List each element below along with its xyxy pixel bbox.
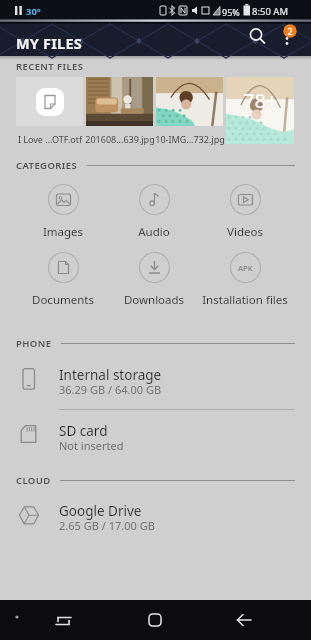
button[interactable] (0, 416, 311, 462)
button[interactable] (139, 604, 171, 636)
staticText: I Love ...OTF.otf (12, 133, 88, 145)
button[interactable]: Audio (109, 184, 199, 240)
staticText: Videos (200, 224, 290, 240)
button[interactable]: Downloads (109, 252, 199, 308)
staticText: Downloads (109, 292, 199, 308)
staticText: 95% (222, 6, 240, 18)
staticText: SD card (59, 422, 108, 440)
staticText: 2 (286, 25, 294, 37)
staticText: 8:50 AM (252, 5, 289, 18)
button[interactable]: Images (18, 184, 108, 240)
staticText: CLOUD (16, 474, 51, 487)
staticText: APK (238, 263, 253, 273)
staticText: MY FILES (16, 33, 82, 53)
button[interactable]: 10-IMG...732.jpg (156, 77, 223, 145)
staticText: RECENT FILES (16, 60, 84, 73)
staticText: PHONE (16, 337, 52, 350)
button[interactable]: 2 (275, 24, 307, 56)
staticText: 10-IMG...732.jpg (152, 133, 228, 145)
button[interactable] (228, 604, 260, 636)
button[interactable] (241, 24, 273, 56)
button[interactable]: Documents (18, 252, 108, 308)
staticText: Images (18, 224, 108, 240)
button[interactable] (0, 496, 311, 542)
staticText: Not inserted (59, 438, 124, 453)
staticText: Audio (109, 224, 199, 240)
button[interactable]: I Love ...OTF.otf (16, 77, 83, 145)
staticText: 30° (26, 5, 41, 18)
button[interactable]: APK (200, 252, 290, 308)
staticText: Documents (18, 292, 108, 308)
staticText: Internal storage (59, 366, 162, 384)
staticText: Installation files (200, 292, 290, 308)
button[interactable]: 78+ (226, 77, 294, 144)
staticText: CATEGORIES (16, 159, 78, 172)
staticText: 2.65 GB / 17.00 GB (59, 518, 155, 533)
button[interactable]: 201608...639.jpg (86, 77, 153, 145)
button[interactable]: Videos (200, 184, 290, 240)
staticText: Google Drive (59, 502, 142, 520)
button[interactable] (0, 360, 311, 406)
button[interactable] (47, 604, 79, 636)
staticText: 78+ (243, 87, 278, 114)
staticText: 201608...639.jpg (82, 133, 158, 145)
staticText: 36.29 GB / 64.00 GB (59, 382, 162, 397)
